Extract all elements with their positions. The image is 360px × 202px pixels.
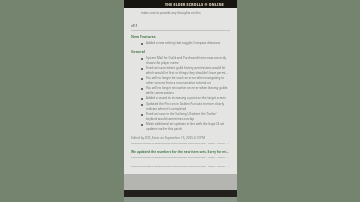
staticText: You will no longer be stuck on error whe… [146, 76, 228, 84]
staticText: We updated the numbers for the new item … [131, 150, 230, 154]
staticText: Added a sound to increasing a point on t… [146, 96, 227, 100]
button[interactable]: The Elder Scrolls Online home [124, 0, 237, 8]
button[interactable]: General [131, 46, 230, 55]
button[interactable]: New Features [131, 31, 230, 40]
button[interactable]: You will no longer encounter an error wh… [131, 85, 230, 95]
button[interactable]: System Mail for Guild and Purchased item… [131, 55, 230, 65]
button[interactable]: Added a sound to increasing a point on t… [131, 95, 230, 101]
button[interactable]: Fixed an issue where guild history permi… [131, 65, 230, 75]
staticText: Community Manager for Bethesda Online St… [131, 165, 230, 168]
button[interactable]: Fixed an issue in the Scribing UI where … [131, 111, 230, 121]
button[interactable]: Updated the Pin icon in Golden Pursuits … [131, 101, 230, 111]
button[interactable]: You will no longer be stuck on error whe… [131, 75, 230, 85]
staticText: THE ELDER SCROLLS ® ONLINE [165, 2, 224, 7]
staticText: v9.1 [131, 24, 138, 28]
staticText: Made additional art updates in line with… [146, 122, 228, 130]
button[interactable]: We updated the numbers for the new item … [131, 150, 230, 154]
staticText: Edited by ZOS_Kevin on September 15, 202… [131, 136, 230, 140]
staticText: Added a new setting that toggles Compass… [146, 41, 221, 45]
staticText: You will no longer encounter an error wh… [146, 86, 228, 94]
staticText: System Mail for Guild and Purchased item… [146, 56, 228, 64]
staticText: Community Manager for Bethesda Online St… [131, 142, 230, 145]
staticText: Updated the Pin icon in Golden Pursuits … [146, 102, 228, 110]
button[interactable]: Added a new setting that toggles Compass… [131, 40, 230, 46]
staticText: Fixed an issue in the Scribing UI where … [146, 112, 228, 120]
button[interactable]: Made additional art updates in line with… [131, 121, 230, 131]
staticText: Fixed an issue where guild history permi… [146, 66, 228, 74]
staticText: General [131, 49, 145, 54]
staticText: New Features [131, 34, 156, 39]
staticText: make sure to provide any thoughts on thi… [141, 11, 201, 15]
staticText: Community Manager for Bethesda Online St… [131, 156, 230, 159]
